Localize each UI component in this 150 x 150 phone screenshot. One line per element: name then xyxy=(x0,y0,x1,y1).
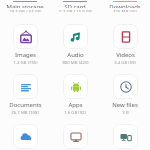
staticText: SD card xyxy=(64,3,86,8)
staticText: 3.4 GB (59) xyxy=(114,59,136,65)
staticText: 5.7 GB / 15.9 GB xyxy=(59,8,92,12)
staticText: Downloads xyxy=(109,3,141,8)
button[interactable]: Cloud storage xyxy=(0,123,50,150)
staticText: Videos xyxy=(116,51,135,58)
staticText: Audio xyxy=(67,51,84,58)
staticText: 1.2 GB (755) xyxy=(13,59,38,65)
staticText: Images xyxy=(15,51,36,58)
button[interactable]: Computer xyxy=(50,123,100,150)
button[interactable]: Images xyxy=(0,23,50,65)
button[interactable]: Downloads xyxy=(100,1,150,12)
staticText: Main storage xyxy=(6,3,44,8)
staticText: 800 MB (420) xyxy=(62,59,89,65)
button[interactable]: Documents xyxy=(0,73,50,115)
button[interactable]: New files xyxy=(100,73,150,115)
staticText: 26.7 MB (108) xyxy=(11,109,39,115)
staticText: 425 MB (45) xyxy=(113,8,137,12)
button[interactable]: Main storage xyxy=(0,1,50,12)
button[interactable]: Videos xyxy=(100,23,150,65)
staticText: 29.5 GB / 64 GB xyxy=(9,8,41,12)
staticText: New files xyxy=(112,101,138,108)
staticText: Apps xyxy=(68,101,83,108)
button[interactable]: Nearby devices xyxy=(100,123,150,150)
staticText: Documents xyxy=(9,101,42,108)
staticText: 1.6 GB (92) xyxy=(64,109,86,115)
staticText: 3 B xyxy=(122,109,129,115)
button[interactable]: Audio xyxy=(50,23,100,65)
button[interactable]: Apps xyxy=(50,73,100,115)
button[interactable]: SD card xyxy=(50,1,100,12)
